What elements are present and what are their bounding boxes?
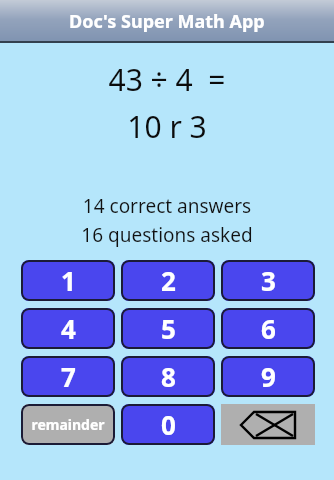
button[interactable]: 2	[121, 260, 215, 301]
button[interactable]: 4	[21, 308, 115, 349]
staticText: 10 r 3	[0, 106, 334, 147]
button[interactable]: 7	[21, 356, 115, 397]
button[interactable]: 6	[221, 308, 315, 349]
staticText: 4	[61, 311, 76, 346]
staticText: 5	[161, 311, 176, 346]
button[interactable]: 3	[221, 260, 315, 301]
staticText: 9	[261, 359, 276, 394]
staticText: 43 ÷ 4 =	[0, 59, 334, 100]
staticText: 16 questions asked	[0, 222, 334, 248]
button[interactable]: 1	[21, 260, 115, 301]
button[interactable]: remainder	[21, 404, 115, 445]
staticText: 7	[61, 359, 76, 394]
button[interactable]: 5	[121, 308, 215, 349]
staticText: Doc's Super Math App	[69, 9, 265, 34]
staticText: remainder	[31, 415, 105, 434]
button[interactable]: 8	[121, 356, 215, 397]
staticText: 3	[261, 263, 276, 298]
button[interactable]: 9	[221, 356, 315, 397]
staticText: 0	[161, 407, 176, 442]
staticText: 6	[261, 311, 276, 346]
button[interactable]: Backspace	[221, 404, 315, 445]
staticText: 2	[161, 263, 176, 298]
staticText: 14 correct answers	[0, 193, 334, 219]
button[interactable]: 0	[121, 404, 215, 445]
staticText: 1	[61, 263, 76, 298]
staticText: 8	[161, 359, 176, 394]
